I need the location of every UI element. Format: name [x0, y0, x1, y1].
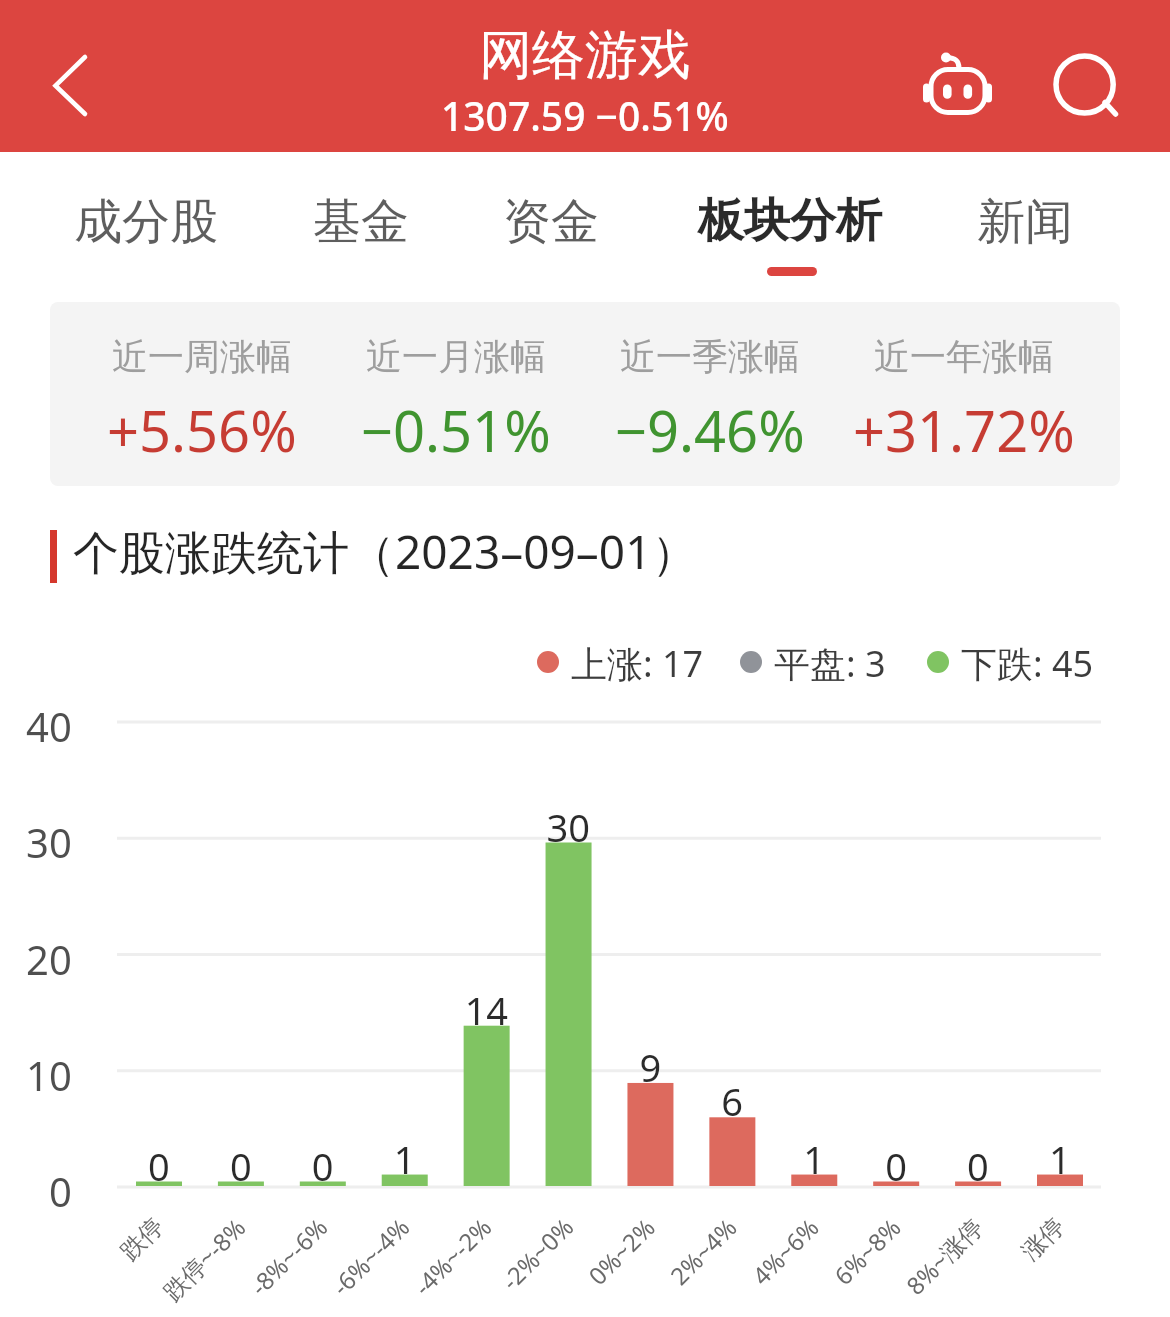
staticText: 近一周涨幅	[112, 334, 292, 379]
button[interactable]: 资金	[473, 160, 629, 290]
staticText: 网络游戏	[479, 22, 691, 89]
button[interactable]	[50, 302, 1120, 486]
staticText: 个股涨跌统计（2023–09–01）	[73, 520, 698, 583]
staticText: 基金	[313, 192, 409, 252]
staticText: 资金	[503, 192, 599, 252]
staticText: 近一月涨幅	[366, 334, 546, 379]
button[interactable]: Back	[0, 0, 140, 152]
button[interactable]: Search	[1035, 35, 1141, 139]
button[interactable]: 板块分析	[668, 160, 912, 290]
button[interactable]: 成分股	[44, 160, 248, 290]
button[interactable]: AI assistant	[905, 32, 1011, 136]
button[interactable]: 平盘: 3	[740, 639, 886, 685]
button[interactable]: 下跌: 45	[927, 639, 1094, 685]
staticText: −0.51%	[361, 392, 551, 468]
staticText: 1307.59 −0.51%	[441, 89, 729, 142]
staticText: +31.72%	[853, 392, 1075, 468]
staticText: +5.56%	[107, 392, 297, 468]
staticText: 新闻	[977, 192, 1073, 252]
staticText: 下跌: 45	[961, 639, 1094, 685]
staticText: 板块分析	[698, 192, 882, 250]
staticText: 平盘: 3	[774, 639, 886, 685]
button[interactable]: 基金	[283, 160, 439, 290]
staticText: 上涨: 17	[571, 639, 704, 685]
button[interactable]: 新闻	[947, 160, 1103, 290]
staticText: −9.46%	[615, 392, 805, 468]
staticText: 成分股	[74, 192, 218, 252]
staticText: 近一季涨幅	[620, 334, 800, 379]
staticText: 近一年涨幅	[874, 334, 1054, 379]
button[interactable]: 上涨: 17	[537, 639, 704, 685]
